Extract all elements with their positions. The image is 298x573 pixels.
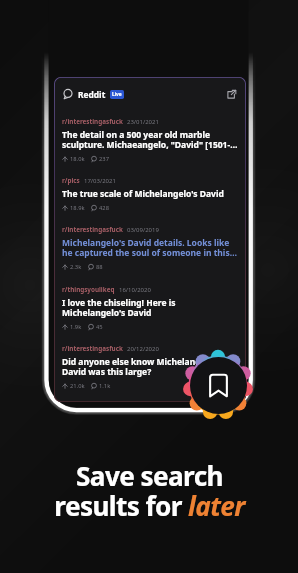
staticText: r/thingsyoulikeq [62,285,115,294]
button[interactable]: r/interestingasfuck [54,117,246,163]
staticText: 1.1k [99,382,111,390]
staticText: 45 [96,323,103,331]
staticText: The detail on a 500 year old marble scul… [62,129,238,151]
staticText: 03/09/2019 [127,226,159,234]
button[interactable]: r/interestingasfuck [54,344,246,390]
staticText: 237 [99,155,109,163]
staticText: 1.9k [70,323,82,331]
staticText: 23/01/2021 [127,118,159,126]
staticText: Reddit [78,89,106,100]
staticText: The true scale of Michelangelo's David [62,188,224,200]
staticText: Michelangelo's David details. Looks like… [62,237,238,259]
button[interactable]: r/thingsyoulikeq [54,285,246,331]
staticText: 16/10/2020 [119,286,151,294]
staticText: 428 [99,204,109,212]
staticText: I love the chiseling! Here is Michelange… [62,297,238,319]
button[interactable]: Save post [190,357,247,414]
staticText: 20/12/2020 [127,345,159,353]
staticText: Did anyone else know Michelangelo's Davi… [62,356,238,378]
staticText: r/interestingasfuck [62,225,123,234]
staticText: Live [112,91,122,98]
staticText: 17/03/2021 [84,177,116,185]
staticText: r/interestingasfuck [62,344,123,353]
staticText: 2.3k [70,263,82,271]
button[interactable]: Open in browser [225,88,238,101]
staticText: 88 [96,263,103,271]
staticText: r/pics [62,176,80,185]
staticText: 18.9k [70,204,85,212]
staticText: 21.0k [70,382,85,390]
staticText: Save search results for later [54,458,245,523]
button[interactable]: r/interestingasfuck [54,225,246,271]
staticText: r/interestingasfuck [62,117,123,126]
staticText: 18.0k [70,155,85,163]
button[interactable]: r/pics [54,176,246,212]
